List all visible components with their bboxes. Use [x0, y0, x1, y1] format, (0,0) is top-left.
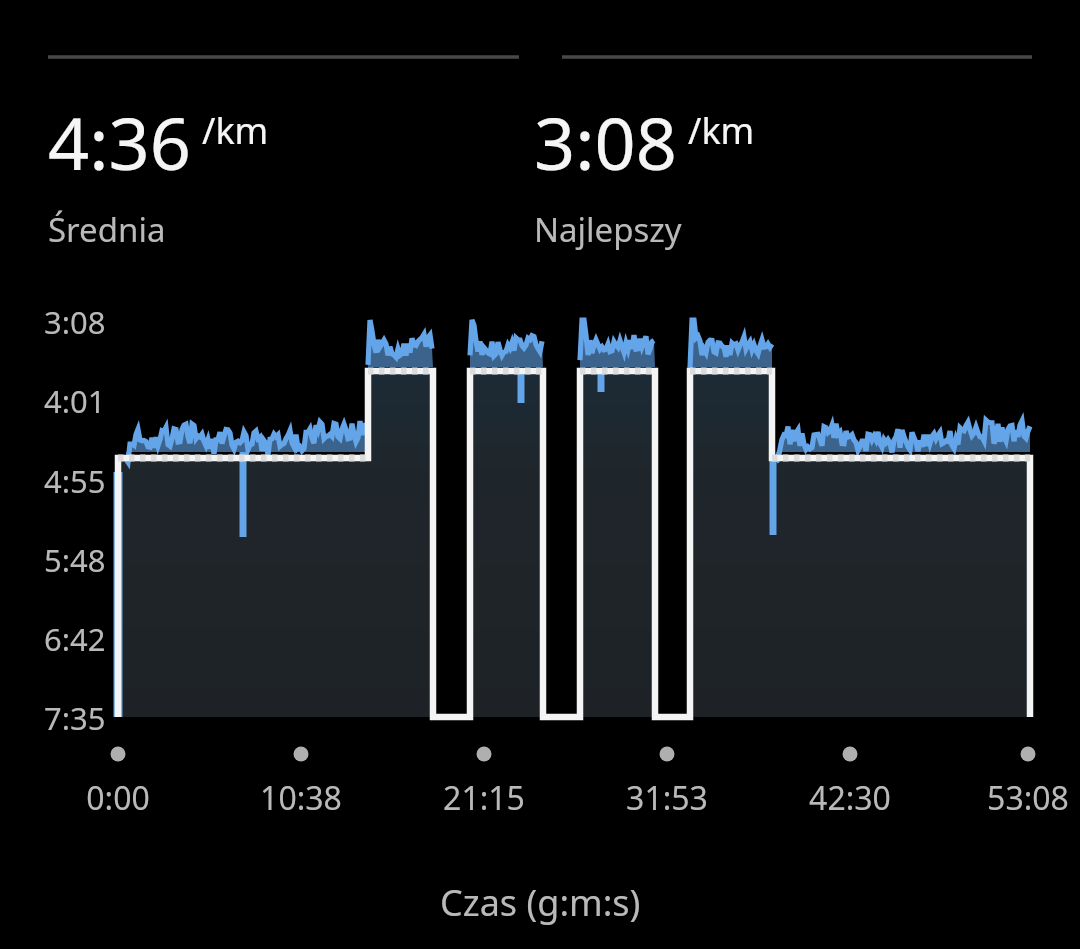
staticText: 4:55	[44, 460, 106, 502]
staticText: 3:08	[534, 93, 677, 191]
staticText: 53:08	[987, 776, 1069, 820]
staticText: 4:01	[44, 380, 106, 422]
staticText: 6:42	[44, 618, 106, 660]
button[interactable]: 3:08	[534, 93, 755, 252]
staticText: 7:35	[44, 697, 106, 739]
staticText: 0:00	[86, 776, 150, 820]
staticText: 5:48	[44, 539, 106, 581]
staticText: 42:30	[809, 776, 891, 820]
staticText: 4:36	[48, 93, 191, 191]
button[interactable]: 4:36	[48, 93, 269, 252]
staticText: 31:53	[626, 776, 708, 820]
staticText: Najlepszy	[534, 207, 682, 252]
staticText: /km	[202, 106, 269, 155]
staticText: 3:08	[44, 301, 106, 343]
staticText: 21:15	[443, 776, 525, 820]
staticText: /km	[688, 106, 755, 155]
staticText: Średnia	[48, 207, 166, 252]
button[interactable]: Czas (g:m:s)	[440, 878, 641, 927]
staticText: 10:38	[260, 776, 342, 820]
